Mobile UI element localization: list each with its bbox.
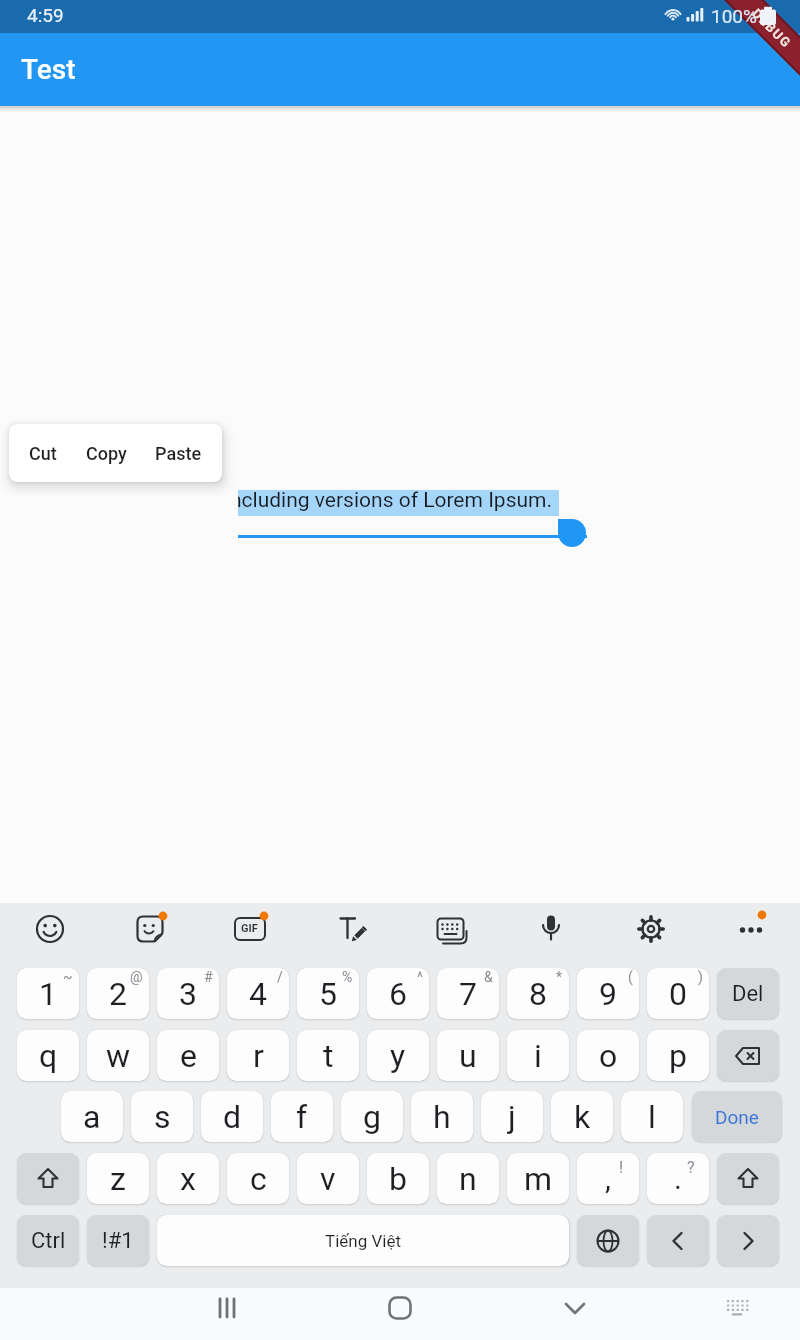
button[interactable] bbox=[717, 1153, 779, 1204]
button[interactable] bbox=[529, 907, 573, 951]
staticText: 4:59 bbox=[27, 4, 64, 26]
button[interactable] bbox=[429, 907, 473, 951]
button[interactable] bbox=[378, 1286, 422, 1330]
staticText: l bbox=[648, 1098, 656, 1136]
button[interactable]: Del bbox=[717, 968, 779, 1019]
button[interactable]: u bbox=[437, 1030, 499, 1081]
button[interactable]: t bbox=[297, 1030, 359, 1081]
button[interactable]: Tiếng Việt bbox=[157, 1215, 569, 1266]
button[interactable]: 3 bbox=[157, 968, 219, 1019]
staticText: Ctrl bbox=[31, 1228, 66, 1254]
staticText: x bbox=[180, 1160, 196, 1198]
staticText: 4 bbox=[249, 975, 267, 1013]
staticText: k bbox=[574, 1098, 591, 1136]
button[interactable]: . bbox=[647, 1153, 709, 1204]
staticText: r bbox=[253, 1037, 264, 1075]
button[interactable]: d bbox=[201, 1091, 263, 1142]
staticText: z bbox=[110, 1160, 126, 1198]
staticText: 3 bbox=[179, 975, 197, 1013]
button[interactable]: a bbox=[61, 1091, 123, 1142]
button[interactable] bbox=[647, 1215, 709, 1266]
button[interactable]: , bbox=[577, 1153, 639, 1204]
staticText: DEBUG bbox=[749, 6, 794, 51]
button[interactable]: 4 bbox=[227, 968, 289, 1019]
button[interactable]: 9 bbox=[577, 968, 639, 1019]
button[interactable]: m bbox=[507, 1153, 569, 1204]
button[interactable] bbox=[577, 1215, 639, 1266]
button[interactable]: c bbox=[227, 1153, 289, 1204]
staticText: @ bbox=[130, 969, 143, 985]
button[interactable]: r bbox=[227, 1030, 289, 1081]
button[interactable] bbox=[717, 1215, 779, 1266]
button[interactable] bbox=[17, 1153, 79, 1204]
button[interactable]: h bbox=[411, 1091, 473, 1142]
button[interactable]: x bbox=[157, 1153, 219, 1204]
button[interactable]: 5 bbox=[297, 968, 359, 1019]
staticText: ^ bbox=[417, 969, 423, 985]
staticText: w bbox=[106, 1037, 131, 1075]
staticText: 1 bbox=[39, 975, 57, 1013]
staticText: Del bbox=[732, 981, 764, 1007]
button[interactable]: 6 bbox=[367, 968, 429, 1019]
staticText: Done bbox=[715, 1106, 759, 1128]
staticText: % bbox=[342, 969, 353, 985]
button[interactable] bbox=[330, 907, 374, 951]
button[interactable]: !#1 bbox=[87, 1215, 149, 1266]
button[interactable]: j bbox=[481, 1091, 543, 1142]
button[interactable] bbox=[228, 907, 272, 951]
button[interactable]: f bbox=[271, 1091, 333, 1142]
button[interactable]: 2 bbox=[87, 968, 149, 1019]
staticText: s bbox=[154, 1098, 171, 1136]
button[interactable]: 7 bbox=[437, 968, 499, 1019]
button[interactable]: g bbox=[341, 1091, 403, 1142]
staticText: , bbox=[605, 1161, 611, 1196]
button[interactable]: b bbox=[367, 1153, 429, 1204]
button[interactable]: s bbox=[131, 1091, 193, 1142]
button[interactable] bbox=[717, 1030, 779, 1081]
button[interactable] bbox=[729, 907, 773, 951]
button[interactable]: o bbox=[577, 1030, 639, 1081]
button[interactable]: 0 bbox=[647, 968, 709, 1019]
button[interactable] bbox=[28, 907, 72, 951]
button[interactable]: 1 bbox=[17, 968, 79, 1019]
staticText: ( bbox=[628, 969, 633, 985]
staticText: u bbox=[459, 1037, 477, 1075]
button[interactable] bbox=[715, 1286, 759, 1330]
staticText: / bbox=[277, 969, 283, 985]
staticText: o bbox=[599, 1037, 618, 1075]
staticText: b bbox=[389, 1160, 407, 1198]
button[interactable]: Cut bbox=[29, 424, 57, 482]
staticText: a bbox=[83, 1098, 101, 1136]
button[interactable]: q bbox=[17, 1030, 79, 1081]
button[interactable]: Ctrl bbox=[17, 1215, 79, 1266]
button[interactable]: y bbox=[367, 1030, 429, 1081]
button[interactable]: z bbox=[87, 1153, 149, 1204]
button[interactable]: p bbox=[647, 1030, 709, 1081]
button[interactable] bbox=[205, 1286, 249, 1330]
staticText: 8 bbox=[529, 975, 547, 1013]
button[interactable]: Paste bbox=[155, 424, 202, 482]
button[interactable]: Copy bbox=[86, 424, 127, 482]
staticText: p bbox=[669, 1037, 687, 1075]
button[interactable]: i bbox=[507, 1030, 569, 1081]
staticText: 9 bbox=[599, 975, 617, 1013]
staticText: m bbox=[524, 1160, 553, 1198]
staticText: ncluding versions of Lorem Ipsum. bbox=[238, 488, 553, 513]
staticText: Copy bbox=[86, 443, 127, 464]
button[interactable] bbox=[128, 907, 172, 951]
button[interactable]: n bbox=[437, 1153, 499, 1204]
staticText: 0 bbox=[669, 975, 687, 1013]
staticText: # bbox=[204, 969, 213, 985]
button[interactable]: l bbox=[621, 1091, 683, 1142]
button[interactable] bbox=[553, 1286, 597, 1330]
staticText: c bbox=[250, 1160, 267, 1198]
button[interactable]: k bbox=[551, 1091, 613, 1142]
button[interactable]: Done bbox=[692, 1091, 782, 1142]
button[interactable]: w bbox=[87, 1030, 149, 1081]
button[interactable]: e bbox=[157, 1030, 219, 1081]
staticText: ! bbox=[619, 1158, 624, 1177]
button[interactable]: v bbox=[297, 1153, 359, 1204]
button[interactable] bbox=[0, 33, 800, 106]
button[interactable] bbox=[629, 907, 673, 951]
button[interactable]: 8 bbox=[507, 968, 569, 1019]
